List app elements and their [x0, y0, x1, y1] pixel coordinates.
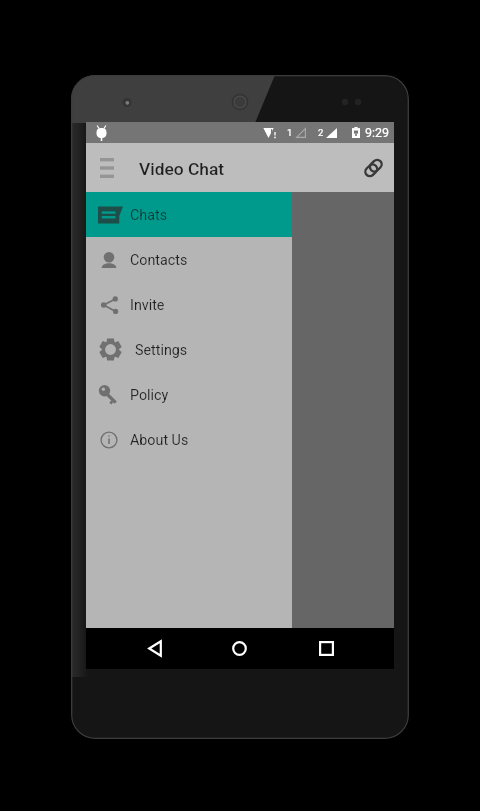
staticText: Video Chat — [139, 159, 225, 179]
staticText: Contacts — [130, 252, 188, 269]
button[interactable]: Open navigation drawer — [86, 143, 127, 192]
button[interactable]: Back — [131, 628, 178, 669]
button[interactable]: Recent apps — [303, 628, 350, 669]
button[interactable]: About Us — [86, 417, 292, 462]
button[interactable]: Copy link — [353, 143, 394, 192]
staticText: Settings — [135, 342, 188, 359]
staticText: Policy — [130, 387, 169, 404]
staticText: Chats — [130, 207, 168, 224]
staticText: Invite — [130, 297, 165, 314]
staticText: 1 — [287, 127, 293, 138]
button[interactable]: Home — [216, 628, 263, 669]
staticText: 2 — [318, 127, 324, 138]
button[interactable]: Settings — [86, 327, 292, 372]
staticText: About Us — [130, 432, 189, 449]
button[interactable]: Policy — [86, 372, 292, 417]
button[interactable]: Chats — [86, 192, 292, 237]
staticText: 9:29 — [365, 125, 390, 140]
button[interactable]: Contacts — [86, 237, 292, 282]
button[interactable]: Invite — [86, 282, 292, 327]
